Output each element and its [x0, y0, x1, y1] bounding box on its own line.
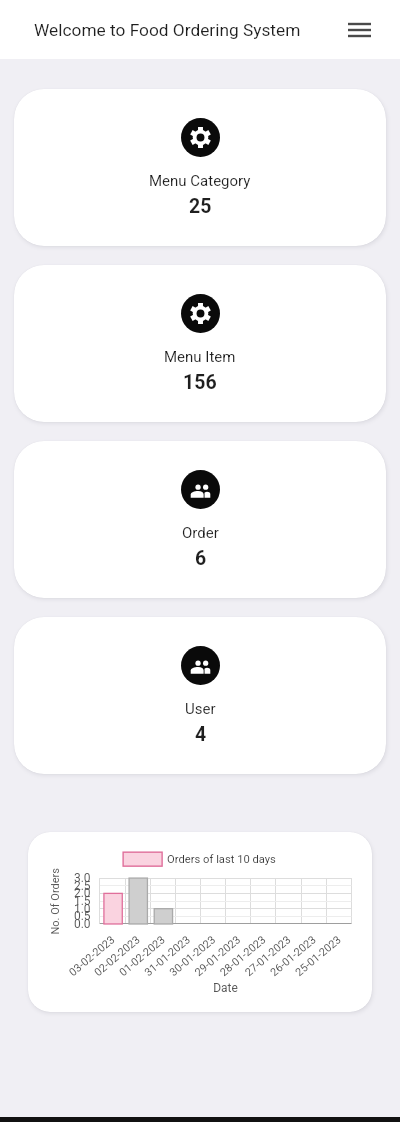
- button[interactable]: Menu: [339, 10, 379, 50]
- button[interactable]: Menu Item: [14, 265, 386, 422]
- staticText: 6: [195, 547, 207, 570]
- staticText: 4: [195, 723, 207, 746]
- staticText: User: [185, 700, 216, 718]
- staticText: 156: [183, 371, 217, 394]
- staticText: Welcome to Food Ordering System: [34, 20, 301, 40]
- button[interactable]: Order: [14, 441, 386, 598]
- button[interactable]: Menu Category: [14, 89, 386, 246]
- button[interactable]: User: [14, 617, 386, 774]
- staticText: Menu Item: [164, 348, 236, 366]
- staticText: Menu Category: [149, 172, 251, 190]
- staticText: 25: [189, 195, 212, 218]
- staticText: Order: [182, 524, 219, 542]
